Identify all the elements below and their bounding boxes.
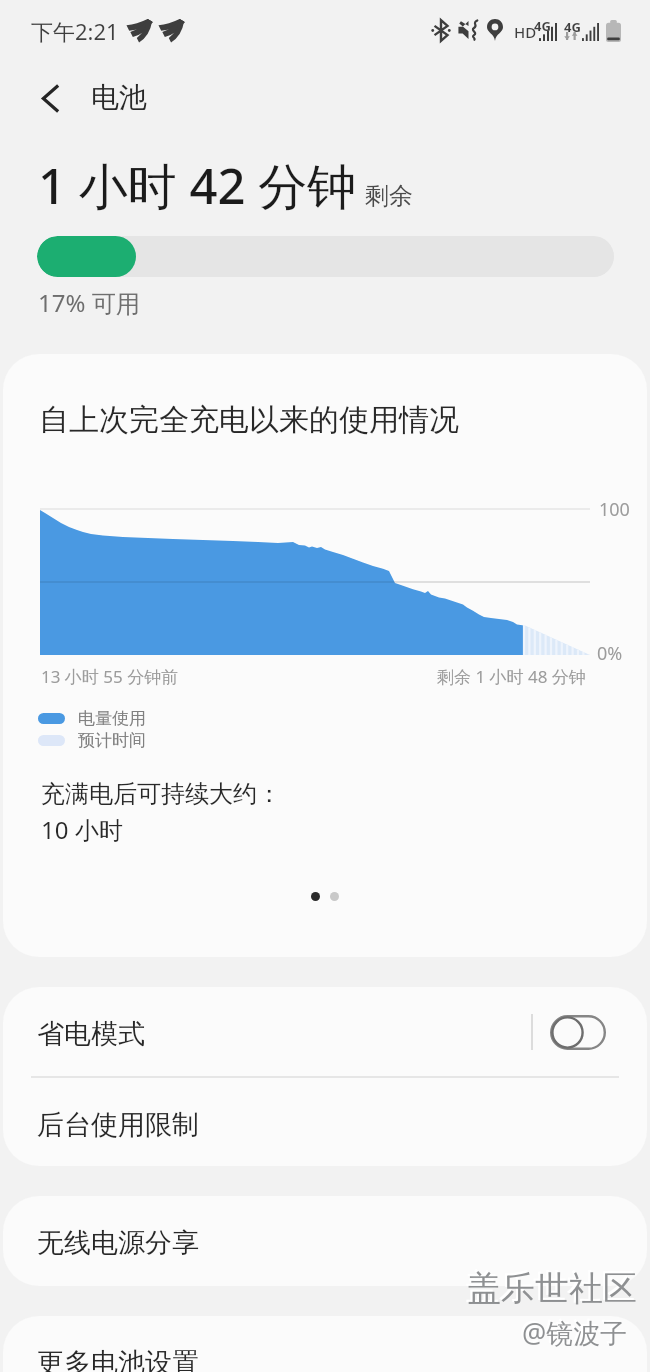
staticText: 剩余 1 小时 48 分钟: [437, 665, 586, 688]
button[interactable]: 后台使用限制: [3, 1077, 647, 1166]
staticText: 13 小时 55 分钟前: [41, 665, 179, 688]
staticText: 17% 可用: [38, 286, 140, 319]
button[interactable]: 省电模式开关: [550, 1015, 606, 1050]
staticText: 充满电后可持续大约：: [41, 779, 281, 809]
staticText: 更多电池设置: [37, 1346, 199, 1372]
staticText: 0%: [597, 641, 623, 666]
staticText: @镜波子: [522, 1314, 628, 1351]
staticText: 电量使用: [78, 708, 146, 729]
staticText: HD: [514, 22, 537, 42]
staticText: 预计时间: [78, 730, 146, 751]
button[interactable]: 更多电池设置: [3, 1316, 647, 1372]
staticText: 1 小时 42 分钟: [38, 152, 357, 219]
staticText: 4G: [534, 17, 551, 35]
staticText: 后台使用限制: [37, 1108, 199, 1142]
staticText: @镜波子: [520, 1312, 626, 1349]
button[interactable]: 返回: [28, 76, 72, 120]
staticText: 省电模式: [37, 1017, 145, 1051]
staticText: 无线电源分享: [37, 1226, 199, 1260]
staticText: 盖乐世社区: [465, 1265, 635, 1308]
staticText: 4G: [564, 18, 581, 36]
staticText: 盖乐世社区: [467, 1267, 637, 1310]
staticText: 剩余: [365, 181, 413, 211]
staticText: 100: [599, 497, 630, 522]
button[interactable]: 无线电源分享: [3, 1196, 647, 1286]
staticText: 下午2:21: [31, 16, 119, 46]
staticText: 自上次完全充电以来的使用情况: [39, 401, 459, 439]
button[interactable]: 省电模式: [3, 987, 647, 1077]
staticText: 10 小时: [41, 813, 123, 846]
staticText: 电池: [91, 80, 147, 115]
